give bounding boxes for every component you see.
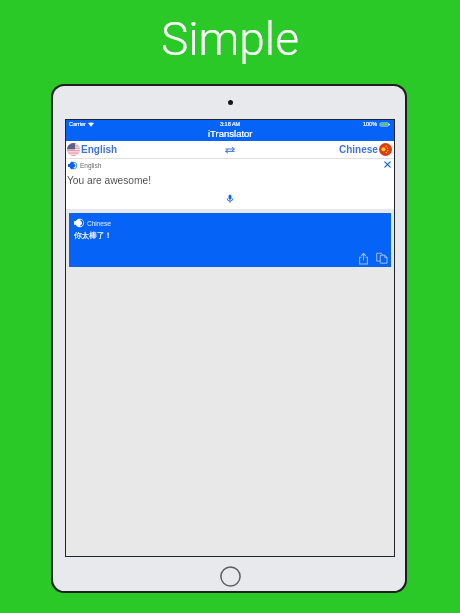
staticText: Carrier — [69, 121, 86, 127]
staticText: Simple — [161, 12, 299, 66]
button[interactable]: Copy — [375, 251, 389, 265]
staticText: 你太棒了！ — [74, 231, 112, 241]
staticText: English — [81, 144, 118, 155]
staticText: 3:18 AM — [220, 121, 241, 127]
button[interactable]: Share — [357, 252, 370, 265]
button[interactable]: English — [67, 143, 118, 156]
staticText: English — [80, 162, 102, 169]
staticText: Chinese — [87, 220, 111, 227]
staticText: 100% — [363, 121, 378, 127]
staticText: You are awesome! — [67, 175, 152, 186]
button[interactable]: Voice input — [224, 192, 236, 204]
button[interactable]: Clear text — [382, 159, 393, 170]
staticText: Chinese — [339, 144, 378, 155]
button[interactable]: Chinese — [339, 143, 392, 156]
staticText: iTranslator — [208, 128, 253, 139]
button[interactable]: Swap languages — [223, 143, 237, 157]
